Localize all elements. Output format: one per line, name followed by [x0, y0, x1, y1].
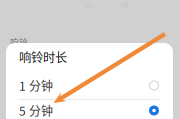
- staticText: 10: [84, 1, 92, 11]
- button[interactable]: 5 分钟: [6, 98, 173, 119]
- staticText: 响铃: [10, 36, 28, 48]
- staticText: 响铃时长: [19, 48, 67, 66]
- button[interactable]: 1 分钟: [6, 73, 173, 98]
- staticText: 17: [121, 1, 129, 11]
- staticText: 5 分钟: [19, 102, 53, 119]
- staticText: 1 分钟: [19, 77, 53, 94]
